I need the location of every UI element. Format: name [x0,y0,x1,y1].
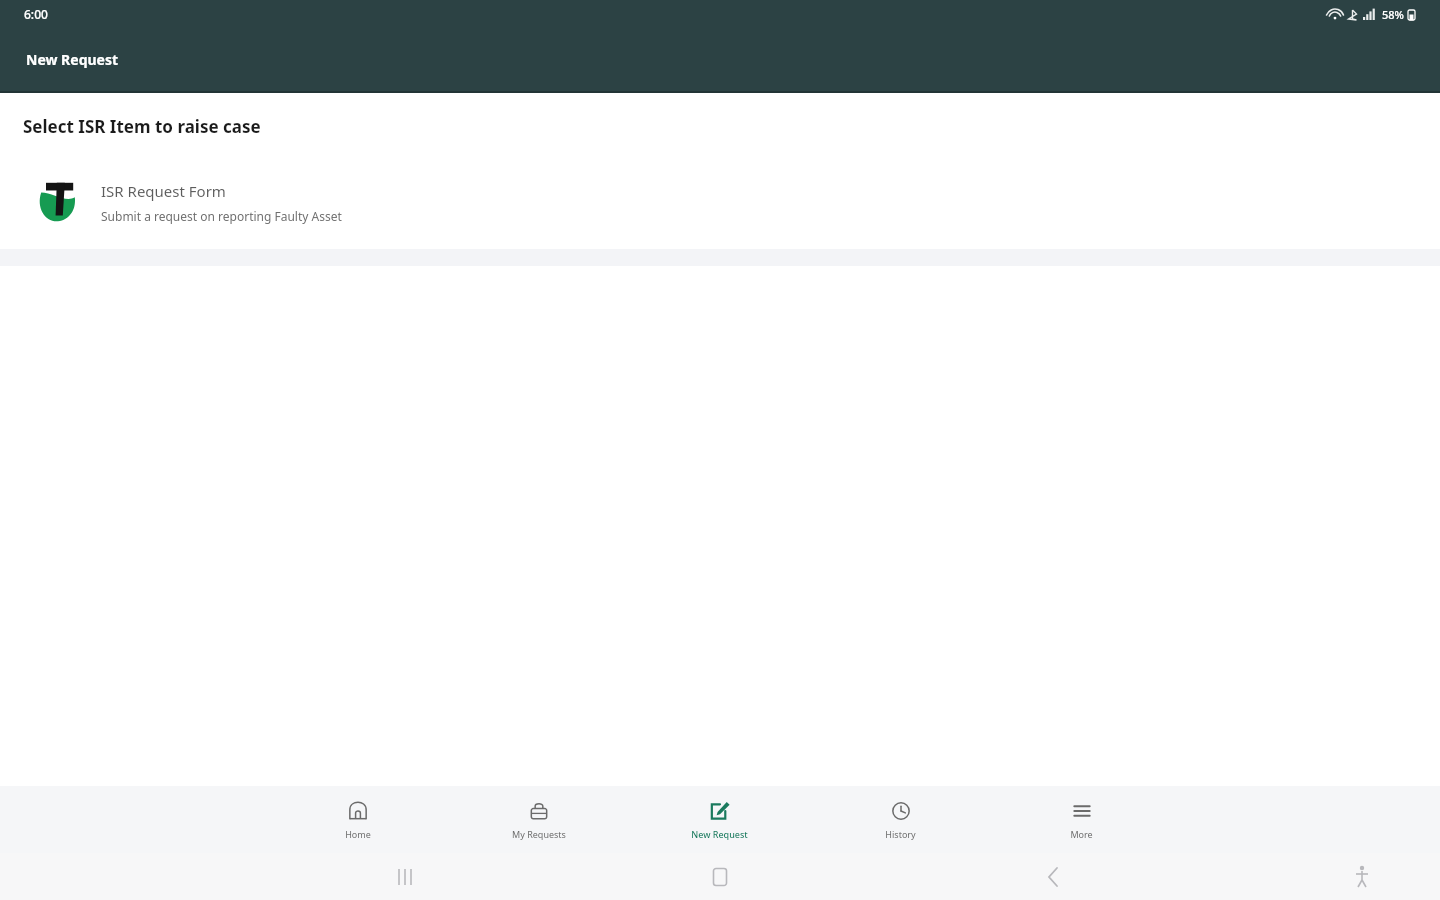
button[interactable]: Recents [390,862,420,892]
button[interactable]: Home [705,862,735,892]
staticText: Home [345,828,371,840]
button[interactable]: Accessibility [1347,862,1377,892]
staticText: Select ISR Item to raise case [23,115,261,138]
button[interactable]: ISR Request Form [0,165,1440,239]
staticText: 58% [1382,7,1404,22]
staticText: 6:00 [24,6,48,22]
staticText: ISR Request Form [101,181,226,201]
button[interactable]: Back [1035,862,1065,892]
button[interactable]: More [991,793,1172,846]
staticText: Submit a request on reporting Faulty Ass… [101,208,342,224]
staticText: My Requests [512,828,566,840]
staticText: More [1070,828,1093,840]
button[interactable]: History [810,793,991,846]
button[interactable]: My Requests [448,793,629,846]
button[interactable]: Home [268,793,448,846]
button[interactable]: New Request [629,793,810,846]
staticText: History [885,828,916,840]
staticText: New Request [691,828,748,840]
staticText: New Request [26,50,119,69]
